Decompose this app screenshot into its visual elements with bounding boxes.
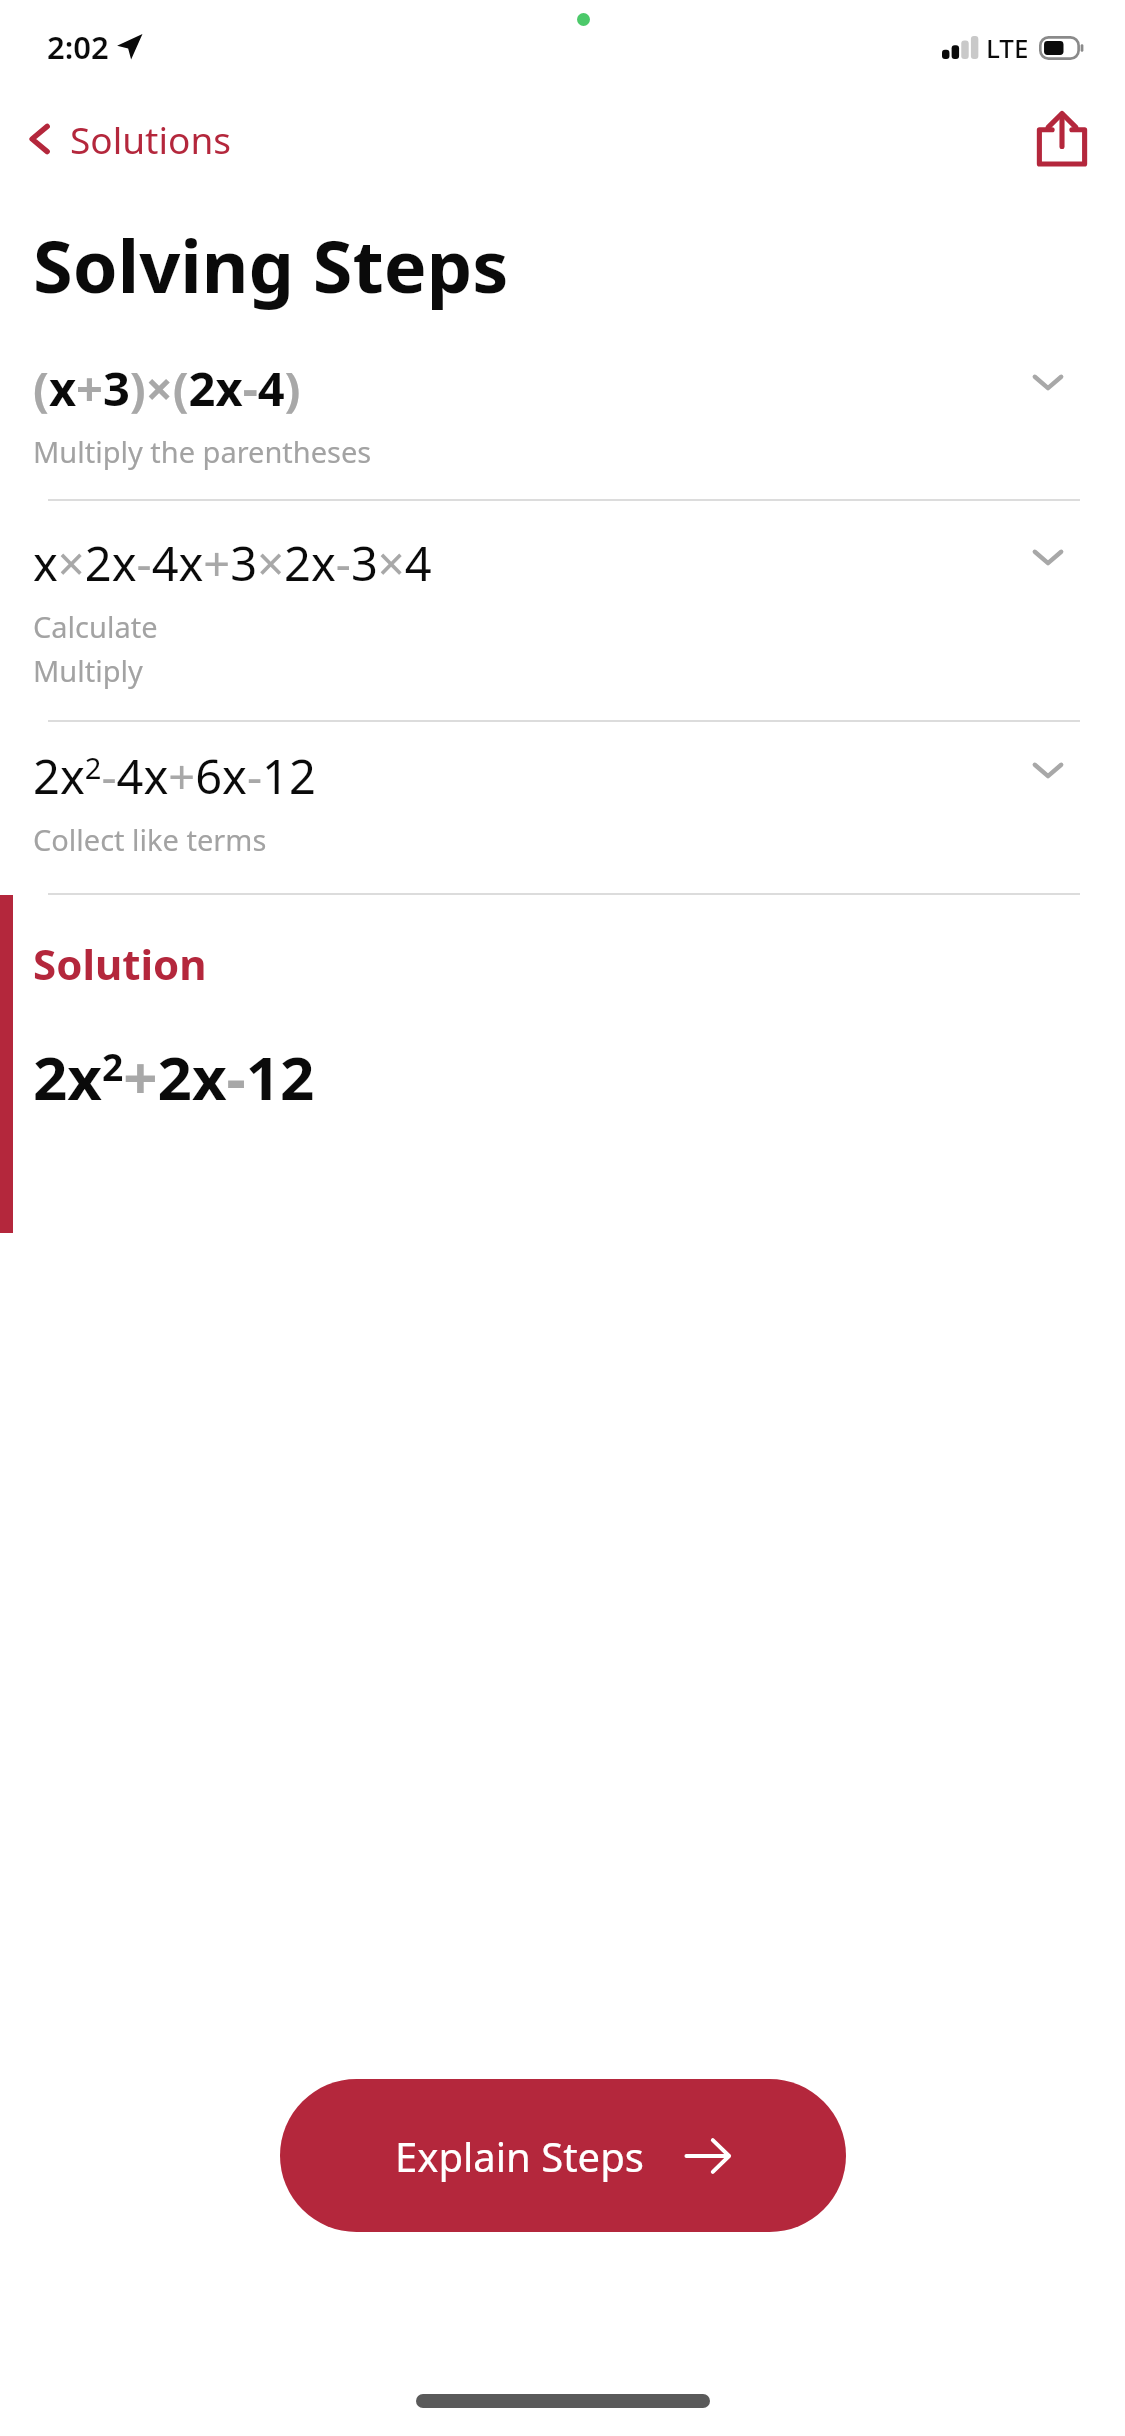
- button[interactable]: Share: [1025, 102, 1099, 176]
- button[interactable]: x×2x-4x+3×2x-3×4: [0, 501, 1125, 720]
- staticText: Solutions: [70, 114, 231, 164]
- button[interactable]: Expand step: [1026, 360, 1070, 404]
- staticText: Solving Steps: [33, 216, 509, 314]
- button[interactable]: Solution: [0, 895, 1125, 1233]
- staticText: (x+3)×(2x-4): [33, 356, 301, 420]
- staticText: 2x2+2x-12: [33, 1036, 315, 1118]
- button[interactable]: Explain Steps: [280, 2079, 846, 2232]
- staticText: x×2x-4x+3×2x-3×4: [33, 531, 432, 595]
- button[interactable]: Expand step: [1026, 748, 1070, 792]
- staticText: 2x2-4x+6x-12: [33, 744, 316, 808]
- staticText: Multiply the parentheses: [33, 432, 372, 471]
- staticText: Solution: [33, 935, 207, 992]
- staticText: Collect like terms: [33, 820, 267, 859]
- staticText: Explain Steps: [395, 2129, 644, 2183]
- staticText: LTE: [986, 30, 1029, 65]
- staticText: Multiply: [33, 651, 143, 690]
- button[interactable]: (x+3)×(2x-4): [0, 356, 1125, 499]
- button[interactable]: Expand step: [1026, 535, 1070, 579]
- button[interactable]: 2x2-4x+6x-12: [0, 722, 1125, 893]
- button[interactable]: Solutions: [14, 102, 239, 176]
- staticText: Calculate: [33, 607, 158, 646]
- staticText: 2:02: [47, 26, 109, 68]
